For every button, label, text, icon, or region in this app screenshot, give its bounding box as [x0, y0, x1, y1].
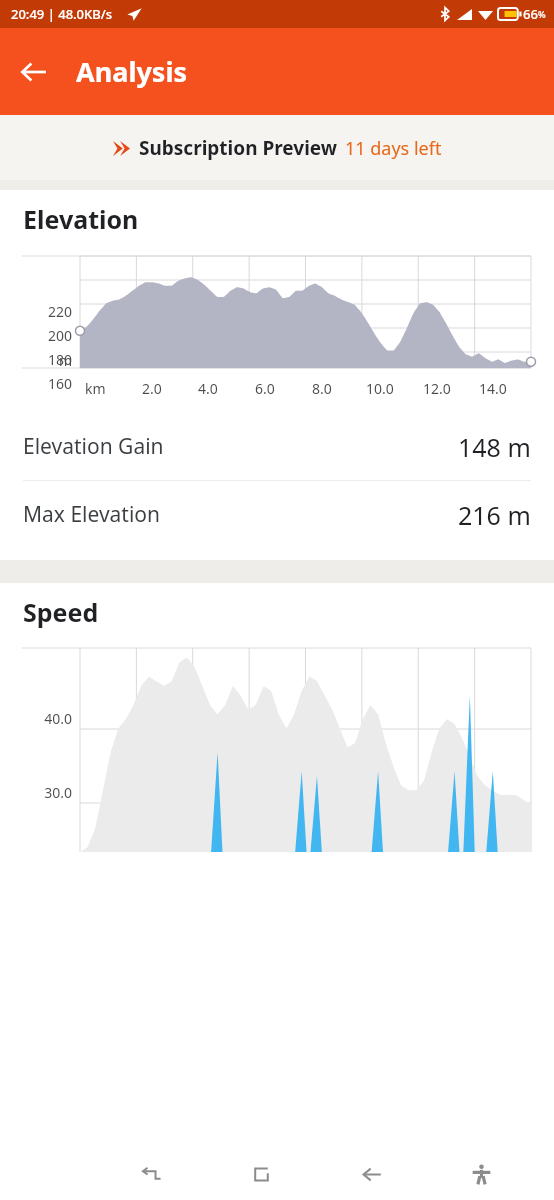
staticText: 200	[28, 326, 72, 345]
button[interactable]: Split screen	[95, 1148, 206, 1200]
staticText: 148 m	[458, 430, 531, 464]
staticText: Elevation Gain	[23, 432, 164, 461]
button[interactable]: Subscription Preview	[0, 115, 554, 180]
staticText: 66	[523, 5, 538, 23]
staticText: 14.0	[479, 379, 507, 398]
button[interactable]: Max Elevation	[0, 481, 554, 548]
staticText: m	[28, 351, 72, 370]
staticText: Elevation	[23, 202, 139, 236]
button[interactable]: Back	[6, 44, 62, 100]
staticText: 220	[28, 302, 72, 321]
staticText: Analysis	[76, 53, 188, 90]
staticText: 12.0	[423, 379, 451, 398]
staticText: 10.0	[366, 379, 394, 398]
staticText: 160	[28, 374, 72, 393]
staticText: 40.0	[28, 709, 72, 728]
staticText: km	[85, 379, 106, 398]
staticText: 8.0	[312, 379, 332, 398]
staticText: 2.0	[142, 379, 162, 398]
staticText: Speed	[23, 595, 99, 629]
staticText: Max Elevation	[23, 500, 161, 529]
staticText: Subscription Preview	[139, 135, 338, 161]
staticText: %	[538, 8, 546, 20]
button[interactable]: Elevation Gain	[0, 413, 554, 480]
staticText: 6.0	[255, 379, 275, 398]
staticText: 4.0	[198, 379, 218, 398]
button[interactable]: Home	[206, 1148, 316, 1200]
button[interactable]: Back	[316, 1148, 426, 1200]
staticText: 180	[28, 350, 72, 369]
staticText: 20:49 | 48.0KB/s	[11, 5, 113, 23]
button[interactable]: Accessibility	[426, 1148, 536, 1200]
staticText: 216 m	[458, 498, 531, 532]
staticText: 11 days left	[345, 136, 442, 161]
staticText: 30.0	[28, 783, 72, 802]
